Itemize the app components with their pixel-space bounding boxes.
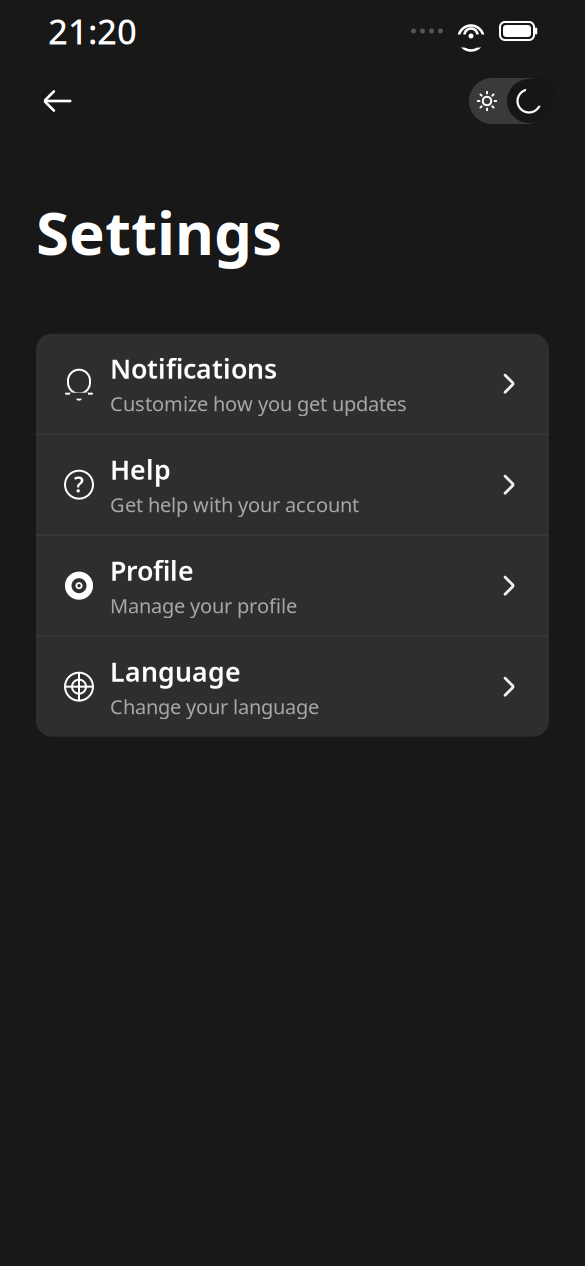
staticText: Notifications — [110, 351, 277, 386]
staticText: Manage your profile — [110, 592, 297, 619]
staticText: Help — [110, 452, 171, 487]
button[interactable]: Notifications — [36, 334, 549, 434]
staticText: Profile — [110, 553, 194, 588]
staticText: ? — [74, 470, 84, 498]
button[interactable]: Profile — [36, 536, 549, 636]
staticText: Customize how you get updates — [110, 390, 407, 417]
staticText: 21:20 — [48, 8, 137, 54]
button[interactable]: Toggle light or dark theme — [467, 78, 551, 124]
staticText: Language — [110, 654, 241, 689]
button[interactable]: ? — [36, 435, 549, 535]
staticText: Change your language — [110, 693, 319, 720]
staticText: Get help with your account — [110, 491, 359, 518]
button[interactable]: Language — [36, 637, 549, 737]
button[interactable]: Back — [32, 76, 82, 126]
staticText: Settings — [36, 192, 282, 272]
